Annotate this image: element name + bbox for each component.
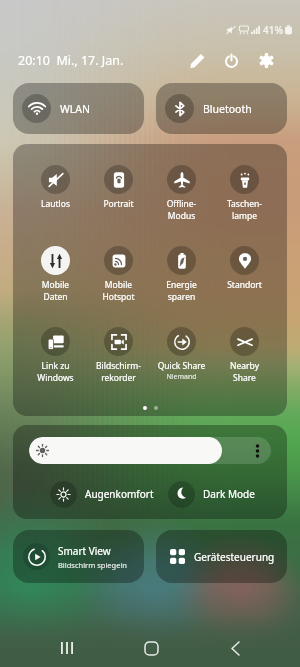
button[interactable]: Portrait: [87, 165, 150, 210]
staticText: Dark Mode: [203, 487, 255, 501]
button[interactable]: WLAN: [13, 83, 144, 134]
button[interactable]: Bildschirm-: [87, 327, 150, 384]
staticText: Niemand: [150, 372, 213, 382]
staticText: 41%: [263, 23, 283, 37]
staticText: Portrait: [87, 198, 150, 210]
staticText: Mobile: [24, 279, 87, 291]
staticText: Bildschirm-: [87, 360, 150, 372]
staticText: Quick Share: [150, 360, 213, 372]
button[interactable]: Bluetooth: [156, 83, 287, 134]
staticText: Link zu: [24, 360, 87, 372]
staticText: rekorder: [87, 372, 150, 384]
button[interactable]: [29, 437, 271, 464]
button[interactable]: Mobile: [24, 246, 87, 303]
button[interactable]: Dark Mode: [168, 480, 255, 508]
staticText: Smart View: [58, 544, 111, 558]
button[interactable]: Smart View: [13, 530, 144, 583]
staticText: Daten: [24, 291, 87, 303]
button[interactable]: Letzte Apps: [45, 626, 89, 667]
staticText: Bildschirm spiegeln: [58, 560, 127, 570]
button[interactable]: Startbildschirm: [129, 626, 173, 667]
staticText: WLAN: [60, 102, 90, 116]
staticText: Mobile: [87, 279, 150, 291]
button[interactable]: Standort: [213, 246, 276, 291]
staticText: sparen: [150, 291, 213, 303]
button[interactable]: Quick Share: [150, 327, 213, 382]
button[interactable]: Offline-: [150, 165, 213, 222]
button[interactable]: Energie: [150, 246, 213, 303]
staticText: Standort: [213, 279, 276, 291]
button[interactable]: Zurück: [213, 626, 257, 667]
staticText: Hotspot: [87, 291, 150, 303]
button[interactable]: Ausschalten: [219, 48, 243, 72]
staticText: Offline-: [150, 198, 213, 210]
button[interactable]: Taschen-: [213, 165, 276, 222]
button[interactable]: Bearbeiten: [185, 48, 209, 72]
button[interactable]: Nearby: [213, 327, 276, 384]
button[interactable]: Einstellungen: [254, 48, 278, 72]
staticText: Share: [213, 372, 276, 384]
staticText: Bluetooth: [203, 102, 252, 116]
button[interactable]: Lautlos: [24, 165, 87, 210]
staticText: Energie: [150, 279, 213, 291]
button[interactable]: Augenkomfort: [50, 480, 154, 508]
staticText: Augenkomfort: [85, 487, 154, 501]
button[interactable]: Mobile: [87, 246, 150, 303]
button[interactable]: Gerätesteuerung: [156, 530, 287, 583]
button[interactable]: Link zu: [24, 327, 87, 384]
staticText: Nearby: [213, 360, 276, 372]
staticText: Gerätesteuerung: [194, 550, 275, 564]
staticText: Windows: [24, 372, 87, 384]
staticText: Lautlos: [24, 198, 87, 210]
staticText: lampe: [213, 210, 276, 222]
staticText: Taschen-: [213, 198, 276, 210]
staticText: Modus: [150, 210, 213, 222]
staticText: 20:10 Mi., 17. Jan.: [18, 52, 124, 69]
